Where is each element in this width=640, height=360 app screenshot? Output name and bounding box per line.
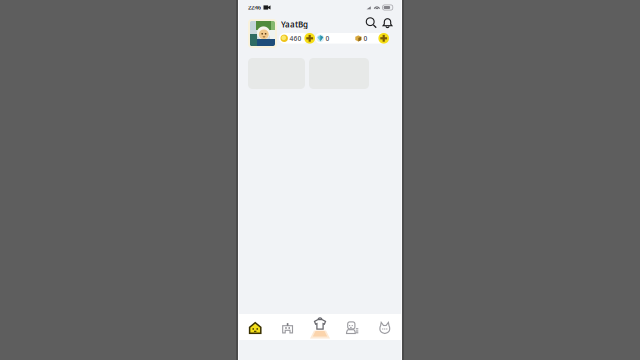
staticText: YaatBg <box>281 19 308 30</box>
button[interactable]: Games <box>271 318 304 338</box>
button[interactable]: Pets <box>369 318 401 338</box>
staticText: 22:46 <box>248 4 261 11</box>
button[interactable]: Friends <box>336 318 369 338</box>
button[interactable]: Home <box>239 318 271 338</box>
button[interactable]: Profile photo <box>248 19 277 48</box>
staticText: 0 <box>326 34 330 43</box>
button[interactable]: Notifications <box>380 16 395 30</box>
button[interactable]: Gems 0, items 0, add more <box>315 33 389 44</box>
button[interactable]: Coins 460, add more <box>279 33 315 44</box>
staticText: 0 <box>363 34 367 43</box>
button[interactable]: Wardrobe <box>304 318 336 338</box>
staticText: 460 <box>289 34 301 43</box>
button[interactable]: Search <box>364 16 379 30</box>
